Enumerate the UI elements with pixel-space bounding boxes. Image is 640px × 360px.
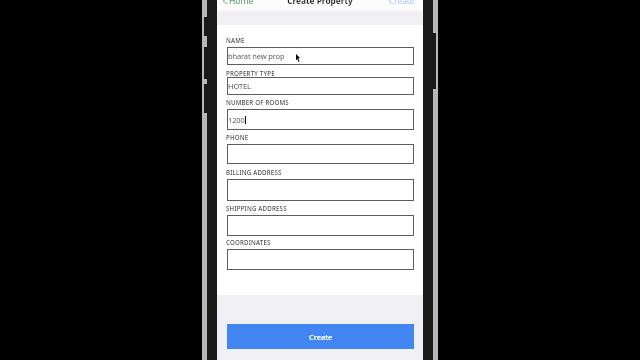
button[interactable] xyxy=(227,249,414,270)
staticText: bharat new prop xyxy=(228,51,285,61)
button[interactable]: HOTEL xyxy=(227,77,414,95)
staticText: HOTEL xyxy=(228,81,251,91)
button[interactable]: Create xyxy=(386,0,416,5)
button[interactable] xyxy=(227,215,414,236)
staticText: 1200 xyxy=(228,115,245,125)
staticText: PROPERTY TYPE xyxy=(226,69,275,77)
staticText: Create xyxy=(309,332,333,342)
other: Pointer xyxy=(296,54,301,62)
staticText: BILLING ADDRESS xyxy=(226,168,282,176)
button[interactable]: Create xyxy=(227,324,414,349)
staticText: NAME xyxy=(226,36,245,44)
staticText: Home xyxy=(229,0,254,7)
staticText: SHIPPING ADDRESS xyxy=(226,204,287,212)
button[interactable]: Back to Home xyxy=(221,0,257,5)
button[interactable]: 1200 xyxy=(227,109,414,130)
staticText: COORDINATES xyxy=(226,238,271,246)
staticText: PHONE xyxy=(226,133,249,141)
staticText: NUMBER OF ROOMS xyxy=(226,98,289,106)
staticText: Create Property xyxy=(217,0,423,6)
button[interactable] xyxy=(227,179,414,201)
button[interactable] xyxy=(227,144,414,164)
staticText: Create xyxy=(389,0,415,6)
button[interactable]: bharat new prop xyxy=(227,47,414,65)
